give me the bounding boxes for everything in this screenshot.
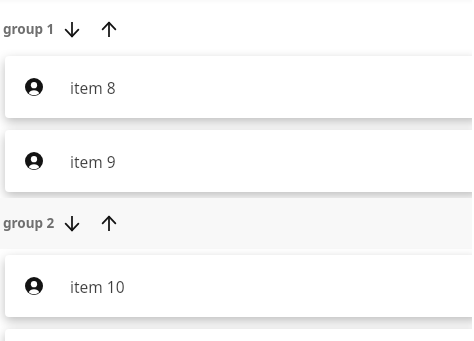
button[interactable]: item 9 xyxy=(5,130,472,192)
button[interactable]: Move group up xyxy=(90,206,127,240)
button[interactable]: item 8 xyxy=(5,56,472,118)
staticText: group 2 xyxy=(3,214,55,232)
staticText: item 10 xyxy=(70,276,125,297)
staticText: item 8 xyxy=(70,77,116,98)
button[interactable]: Move group up xyxy=(90,12,127,46)
button[interactable]: Move group down xyxy=(53,12,90,46)
staticText: item 9 xyxy=(70,151,116,172)
staticText: group 1 xyxy=(3,20,55,38)
button[interactable]: Move group down xyxy=(53,206,90,240)
button[interactable]: item 10 xyxy=(5,255,472,317)
